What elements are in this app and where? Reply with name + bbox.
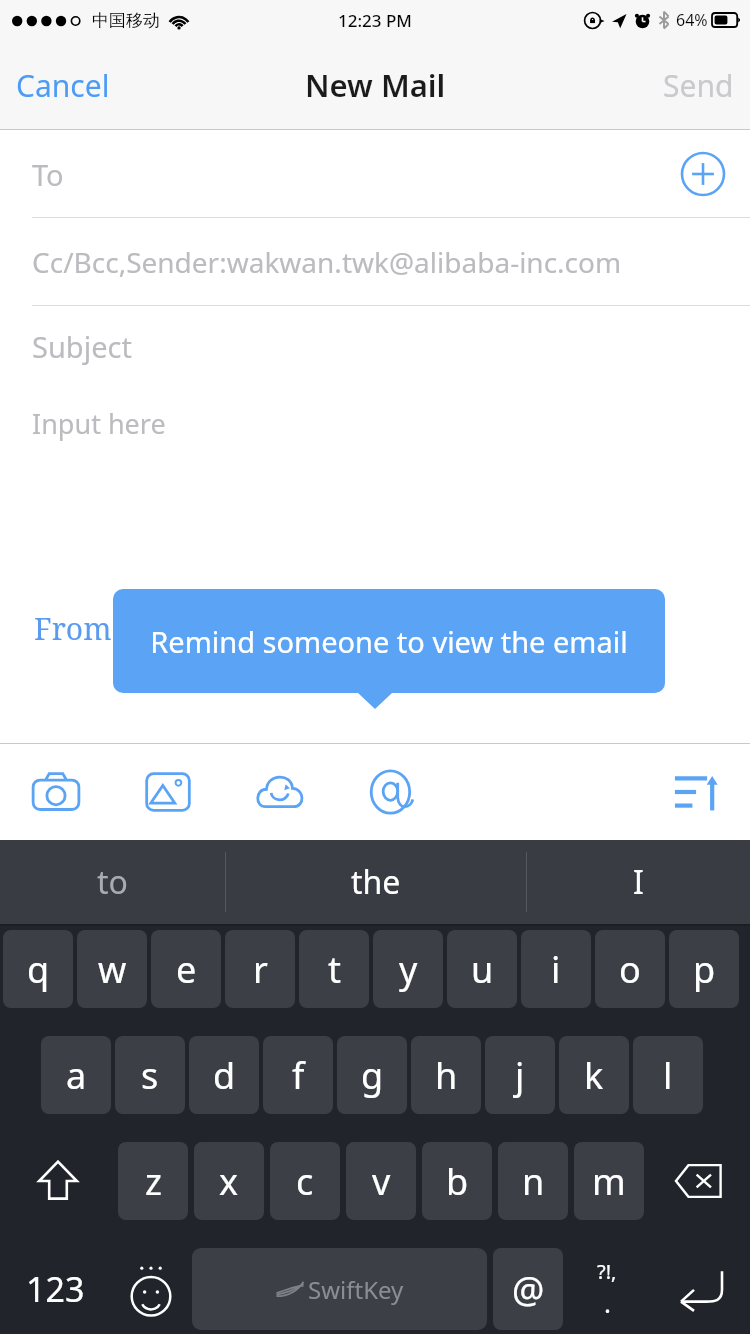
button[interactable]: Mention	[336, 744, 448, 840]
button[interactable]: I	[527, 840, 749, 924]
button[interactable]: Send	[663, 40, 734, 130]
button[interactable]: 123	[0, 1248, 110, 1330]
button[interactable]: n	[498, 1142, 568, 1220]
button[interactable]: w	[77, 930, 147, 1008]
staticText: n	[522, 1157, 545, 1206]
button[interactable]: e	[151, 930, 221, 1008]
staticText: 中国移动	[92, 10, 160, 31]
staticText: p	[693, 945, 716, 994]
button[interactable]: j	[485, 1036, 555, 1114]
staticText: @	[512, 1265, 545, 1314]
button[interactable]: c	[270, 1142, 340, 1220]
button[interactable]: h	[411, 1036, 481, 1114]
staticText: Cc/Bcc,Sender:wakwan.twk@alibaba-inc.com	[32, 243, 622, 281]
button[interactable]: Return	[651, 1248, 750, 1330]
staticText: w	[98, 945, 127, 994]
button[interactable]: Cloud attachment	[224, 744, 336, 840]
button[interactable]: Subject	[0, 306, 750, 386]
staticText: s	[141, 1051, 159, 1100]
staticText: New Mail	[305, 64, 446, 106]
button[interactable]: Space	[192, 1248, 487, 1330]
button[interactable]: u	[447, 930, 517, 1008]
button[interactable]: Photos	[112, 744, 224, 840]
button[interactable]: g	[337, 1036, 407, 1114]
staticText: m	[592, 1157, 626, 1206]
staticText: ?!,	[597, 1258, 617, 1285]
button[interactable]: p	[669, 930, 739, 1008]
button[interactable]: Remind someone to view the email	[113, 589, 665, 693]
staticText: y	[399, 945, 418, 994]
button[interactable]: z	[118, 1142, 188, 1220]
staticText: From	[34, 608, 112, 649]
staticText: t	[328, 945, 341, 994]
button[interactable]: v	[346, 1142, 416, 1220]
staticText: Cancel	[16, 65, 110, 106]
button[interactable]: y	[373, 930, 443, 1008]
button[interactable]: f	[263, 1036, 333, 1114]
button[interactable]: r	[225, 930, 295, 1008]
button[interactable]: @	[493, 1248, 563, 1330]
button[interactable]: k	[559, 1036, 629, 1114]
staticText: z	[145, 1157, 162, 1206]
button[interactable]: d	[189, 1036, 259, 1114]
staticText: .	[604, 1285, 611, 1320]
button[interactable]: l	[633, 1036, 703, 1114]
button[interactable]: to	[0, 840, 225, 924]
staticText: x	[219, 1157, 239, 1206]
staticText: v	[372, 1157, 391, 1206]
staticText: Remind someone to view the email	[150, 622, 628, 661]
button[interactable]: q	[3, 930, 73, 1008]
button[interactable]: the	[226, 840, 526, 924]
button[interactable]: s	[115, 1036, 185, 1114]
button[interactable]: Camera	[0, 744, 112, 840]
staticText: I	[633, 860, 644, 904]
staticText: g	[361, 1051, 384, 1100]
staticText: l	[663, 1051, 673, 1100]
button[interactable]: m	[574, 1142, 644, 1220]
button[interactable]: Add recipient	[680, 151, 726, 197]
staticText: k	[584, 1051, 604, 1100]
button[interactable]: b	[422, 1142, 492, 1220]
button[interactable]: Backspace	[647, 1142, 750, 1220]
staticText: f	[292, 1051, 305, 1100]
staticText: j	[515, 1051, 525, 1100]
staticText: 12:23 PM	[338, 9, 412, 32]
staticText: to	[97, 860, 128, 904]
staticText: the	[351, 860, 401, 904]
staticText: c	[296, 1157, 314, 1206]
button[interactable]: To	[0, 130, 750, 218]
staticText: Input here	[32, 405, 166, 442]
button[interactable]: Sort	[666, 761, 728, 823]
staticText: r	[253, 945, 268, 994]
staticText: 123	[26, 1266, 85, 1312]
staticText: e	[176, 945, 197, 994]
staticText: 64%	[676, 9, 708, 31]
staticText: i	[551, 945, 561, 994]
button[interactable]: Shift	[0, 1142, 115, 1220]
button[interactable]: Cancel	[16, 40, 110, 130]
staticText: h	[435, 1051, 458, 1100]
button[interactable]: i	[521, 930, 591, 1008]
button[interactable]: o	[595, 930, 665, 1008]
button[interactable]: Cc/Bcc,Sender:wakwan.twk@alibaba-inc.com	[0, 218, 750, 306]
staticText: d	[213, 1051, 236, 1100]
staticText: q	[27, 945, 50, 994]
button[interactable]: Emoji	[110, 1248, 192, 1330]
staticText: a	[66, 1051, 87, 1100]
staticText: Send	[663, 65, 734, 106]
button[interactable]: x	[194, 1142, 264, 1220]
button[interactable]: Input here	[0, 386, 750, 460]
button[interactable]: t	[299, 930, 369, 1008]
staticText: SwiftKey	[308, 1273, 404, 1306]
staticText: o	[619, 945, 641, 994]
staticText: u	[471, 945, 494, 994]
staticText: Subject	[32, 327, 132, 366]
button[interactable]: a	[41, 1036, 111, 1114]
button[interactable]: Punctuation	[563, 1248, 651, 1330]
staticText: To	[32, 155, 64, 194]
staticText: b	[446, 1157, 469, 1206]
